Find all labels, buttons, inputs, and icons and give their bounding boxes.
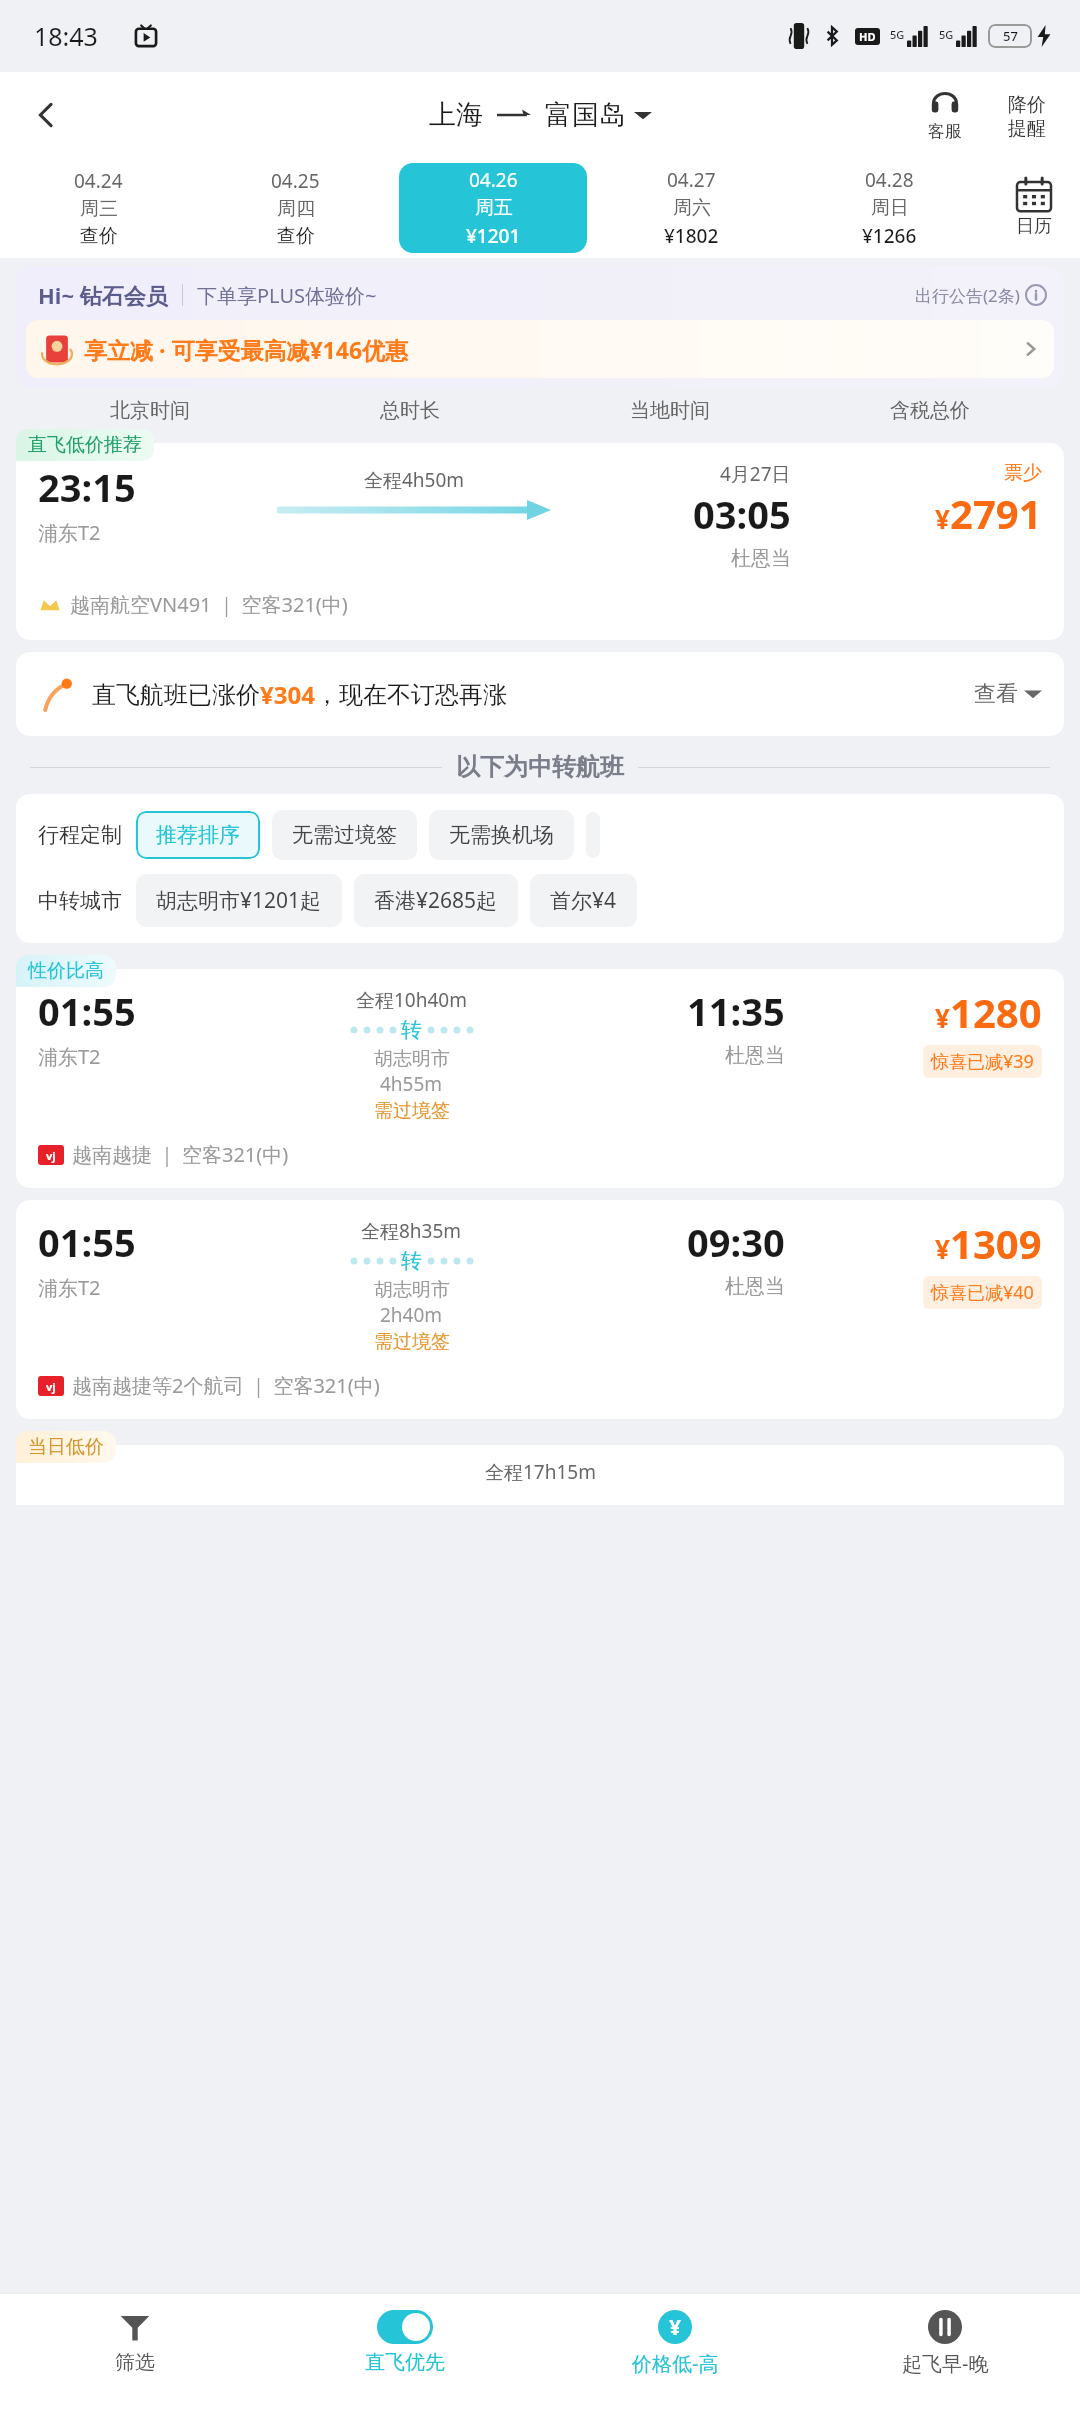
button[interactable]: 日历: [988, 158, 1080, 258]
staticText: ¥: [935, 501, 950, 536]
staticText: ¥1266: [862, 223, 917, 249]
staticText: 4月27日: [720, 461, 791, 487]
staticText: 转: [401, 1248, 422, 1274]
staticText: 无需过境签: [292, 822, 397, 848]
staticText: 胡志明市: [374, 1047, 450, 1071]
staticText: 23:15: [38, 461, 136, 513]
button[interactable]: 无需换机场: [429, 810, 574, 860]
staticText: 北京时间: [20, 398, 280, 423]
staticText: ¥: [669, 2313, 682, 2342]
staticText: 57: [1003, 27, 1018, 45]
staticText: 提醒: [1008, 117, 1046, 141]
staticText: 2h40m: [380, 1302, 443, 1328]
staticText: 越南越捷等2个航司 ｜ 空客321(中): [72, 1372, 380, 1399]
button[interactable]: 首尔¥4: [530, 874, 637, 927]
button[interactable]: 降价: [994, 93, 1060, 141]
button[interactable]: ¥: [540, 2294, 810, 2412]
staticText: 浦东T2: [38, 1043, 101, 1070]
staticText: 04.25: [271, 168, 320, 194]
staticText: 1309: [950, 1216, 1042, 1270]
staticText: 周三: [80, 197, 118, 221]
staticText: 周六: [673, 196, 711, 220]
staticText: 5G: [939, 27, 954, 42]
button[interactable]: 胡志明市¥1201起: [136, 874, 342, 927]
staticText: 客服: [928, 121, 962, 142]
staticText: 04.24: [74, 168, 123, 194]
button[interactable]: 04.25: [202, 163, 389, 253]
staticText: 03:05: [693, 488, 791, 540]
staticText: 全程4h50m: [364, 467, 465, 493]
button[interactable]: 起飞早-晚: [810, 2294, 1080, 2412]
staticText: 杜恩当: [731, 546, 791, 571]
staticText: 周日: [871, 196, 909, 220]
staticText: 杜恩当: [725, 1043, 785, 1068]
staticText: 04.26: [469, 167, 518, 193]
staticText: 周四: [277, 197, 315, 221]
staticText: 需过境签: [374, 1330, 450, 1354]
staticText: ¥: [935, 1231, 950, 1266]
button[interactable]: 01:55: [16, 969, 1064, 1188]
staticText: 越南航空VN491 ｜ 空客321(中): [70, 591, 348, 618]
staticText: 4h55m: [380, 1071, 443, 1097]
button[interactable]: 无需过境签: [272, 810, 417, 860]
staticText: 04.28: [865, 167, 914, 193]
staticText: 当日低价: [28, 1435, 104, 1459]
button[interactable]: 23:15: [16, 443, 1064, 640]
staticText: 性价比高: [28, 959, 104, 983]
staticText: 需过境签: [374, 1099, 450, 1123]
button[interactable]: 推荐排序: [136, 811, 260, 859]
button[interactable]: 返回: [18, 87, 74, 143]
staticText: 享立减 · 可享受最高减¥146优惠: [84, 334, 409, 365]
staticText: 香港¥2685起: [374, 886, 498, 915]
staticText: 09:30: [687, 1216, 785, 1268]
staticText: 转: [401, 1017, 422, 1043]
button[interactable]: 直飞优先: [270, 2294, 540, 2412]
staticText: 降价: [1008, 93, 1046, 117]
staticText: 浦东T2: [38, 1274, 101, 1301]
staticText: 惊喜已减¥40: [931, 1280, 1034, 1305]
button[interactable]: 04.24: [5, 163, 192, 253]
staticText: 01:55: [38, 1216, 136, 1268]
staticText: 总时长: [280, 398, 540, 423]
staticText: 5G: [890, 27, 905, 42]
staticText: 查价: [277, 224, 315, 248]
staticText: 2791: [950, 486, 1042, 540]
staticText: Hi~ 钻石会员: [38, 280, 168, 310]
staticText: 全程10h40m: [356, 987, 467, 1013]
staticText: 周五: [475, 196, 513, 220]
button[interactable]: 04.27: [597, 163, 785, 253]
staticText: 下单享PLUS体验价~: [197, 282, 377, 309]
staticText: 首尔¥4: [550, 886, 617, 915]
button[interactable]: 香港¥2685起: [354, 874, 518, 927]
staticText: 含税总价: [800, 398, 1060, 423]
staticText: 无需换机场: [449, 822, 554, 848]
button[interactable]: 上海: [429, 98, 652, 132]
staticText: vj: [46, 1148, 56, 1163]
button[interactable]: 全程17h15m: [16, 1445, 1064, 1505]
staticText: ，现在不订恐再涨: [315, 680, 507, 710]
staticText: 18:43: [34, 19, 98, 53]
button[interactable]: Hi~ 钻石会员: [16, 266, 1064, 388]
staticText: ¥1201: [466, 223, 521, 249]
button[interactable]: 客服: [906, 89, 984, 142]
staticText: 直飞航班已涨价: [92, 680, 260, 710]
staticText: 起飞早-晚: [902, 2350, 989, 2377]
staticText: ¥1802: [664, 223, 719, 249]
button[interactable]: 筛选: [0, 2294, 270, 2412]
staticText: HD: [859, 29, 876, 44]
staticText: 01:55: [38, 985, 136, 1037]
button[interactable]: 直飞航班已涨价: [16, 652, 1064, 736]
staticText: 杜恩当: [725, 1274, 785, 1299]
staticText: 全程17h15m: [485, 1459, 596, 1485]
button[interactable]: 01:55: [16, 1200, 1064, 1419]
staticText: 价格低-高: [632, 2350, 719, 2377]
button[interactable]: 04.26: [399, 163, 587, 253]
button[interactable]: 享立减 · 可享受最高减¥146优惠: [26, 320, 1054, 378]
staticText: 以下为中转航班: [456, 752, 624, 782]
staticText: 胡志明市: [374, 1278, 450, 1302]
staticText: 行程定制: [38, 822, 122, 848]
staticText: 票少: [1004, 461, 1042, 485]
staticText: 全程8h35m: [361, 1218, 462, 1244]
staticText: 胡志明市¥1201起: [156, 886, 322, 915]
button[interactable]: 04.28: [795, 163, 983, 253]
